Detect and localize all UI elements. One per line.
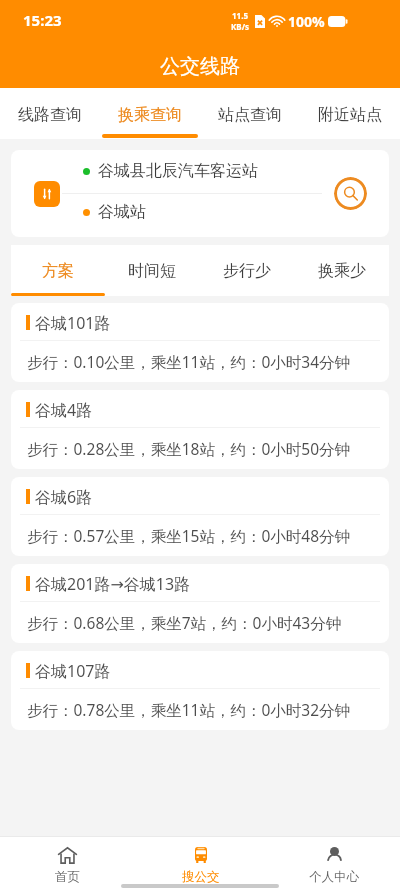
staticText: 100% <box>288 12 325 31</box>
button[interactable]: 首页 <box>0 836 134 892</box>
staticText: 方案 <box>42 261 74 281</box>
button[interactable]: 时间短 <box>105 245 199 296</box>
staticText: 谷城县北辰汽车客运站 <box>98 161 258 181</box>
staticText: 谷城107路 <box>35 660 111 682</box>
staticText: 步行：0.10公里，乘坐11站，约：0小时34分钟 <box>27 351 351 372</box>
button[interactable]: 换乘少 <box>294 245 389 296</box>
button[interactable]: 站点查询 <box>200 88 300 139</box>
staticText: 步行少 <box>223 261 271 281</box>
staticText: 谷城101路 <box>35 312 111 334</box>
button[interactable]: 谷城6路 <box>11 477 389 556</box>
button[interactable]: 搜索 <box>334 177 367 210</box>
button[interactable]: 个人中心 <box>267 836 400 892</box>
staticText: 步行：0.57公里，乘坐15站，约：0小时48分钟 <box>27 525 351 546</box>
staticText: 谷城站 <box>98 202 146 222</box>
staticText: 谷城4路 <box>35 399 93 421</box>
button[interactable]: 方案 <box>11 245 105 296</box>
staticText: 步行：0.28公里，乘坐18站，约：0小时50分钟 <box>27 438 351 459</box>
staticText: KB/s <box>231 21 249 32</box>
staticText: 个人中心 <box>309 869 359 885</box>
staticText: 线路查询 <box>18 105 82 125</box>
staticText: 时间短 <box>128 261 176 281</box>
button[interactable]: 换乘查询 <box>100 88 200 139</box>
staticText: 换乘查询 <box>118 105 182 125</box>
staticText: 步行：0.68公里，乘坐7站，约：0小时43分钟 <box>27 612 342 633</box>
staticText: 11.5 <box>232 10 248 21</box>
staticText: 谷城201路→谷城13路 <box>35 573 191 595</box>
button[interactable]: 交换起终点 <box>34 181 60 207</box>
staticText: 首页 <box>55 869 80 885</box>
button[interactable]: 步行少 <box>199 245 294 296</box>
button[interactable]: 谷城101路 <box>11 303 389 382</box>
staticText: 步行：0.78公里，乘坐11站，约：0小时32分钟 <box>27 699 351 720</box>
staticText: 换乘少 <box>318 261 366 281</box>
button[interactable]: 谷城201路→谷城13路 <box>11 564 389 643</box>
button[interactable]: 搜公交 <box>134 836 267 892</box>
button[interactable]: 附近站点 <box>300 88 400 139</box>
staticText: 搜公交 <box>182 869 220 885</box>
staticText: 15:23 <box>23 10 62 30</box>
staticText: 附近站点 <box>318 105 382 125</box>
button[interactable]: 线路查询 <box>0 88 100 139</box>
staticText: 谷城6路 <box>35 486 93 508</box>
button[interactable]: 谷城107路 <box>11 651 389 730</box>
button[interactable]: 谷城4路 <box>11 390 389 469</box>
staticText: 站点查询 <box>218 105 282 125</box>
staticText: 公交线路 <box>160 54 240 79</box>
